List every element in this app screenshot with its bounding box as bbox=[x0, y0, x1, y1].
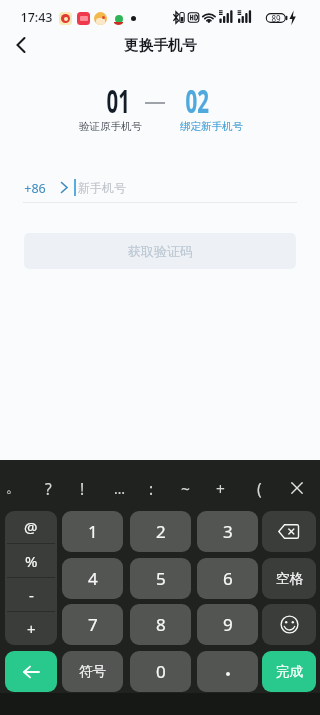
button[interactable] bbox=[18, 175, 72, 200]
staticText: +86 bbox=[24, 180, 46, 197]
button[interactable]: 0 bbox=[130, 651, 191, 692]
button[interactable]: 2 bbox=[130, 511, 191, 552]
button[interactable] bbox=[262, 604, 316, 645]
button[interactable]: : bbox=[134, 471, 168, 505]
staticText: … bbox=[114, 479, 126, 498]
button[interactable]: 获取验证码 bbox=[24, 233, 296, 269]
staticText: ! bbox=[80, 478, 85, 499]
staticText: 完成 bbox=[276, 663, 303, 680]
button[interactable] bbox=[262, 511, 316, 552]
staticText: 02 bbox=[185, 79, 209, 123]
staticText: ~ bbox=[181, 478, 190, 499]
staticText: 5 bbox=[156, 567, 166, 590]
button[interactable]: 6 bbox=[197, 558, 258, 599]
staticText: 7 bbox=[88, 613, 98, 636]
staticText: % bbox=[25, 551, 38, 571]
button[interactable]: … bbox=[103, 471, 137, 505]
button[interactable]: ? bbox=[31, 471, 65, 505]
button[interactable]: ! bbox=[65, 471, 99, 505]
button[interactable]: 符号 bbox=[62, 651, 123, 692]
staticText: + bbox=[27, 619, 36, 639]
staticText: 01 bbox=[106, 79, 130, 123]
staticText: 新手机号 bbox=[78, 180, 126, 195]
staticText: 绑定新手机号 bbox=[180, 120, 243, 133]
staticText: 9 bbox=[223, 613, 233, 636]
button[interactable] bbox=[5, 651, 57, 692]
staticText: 空格 bbox=[276, 570, 303, 587]
button[interactable]: 9 bbox=[197, 604, 258, 645]
button[interactable]: @ bbox=[5, 511, 57, 645]
button[interactable]: + bbox=[203, 471, 237, 505]
button[interactable]: 4 bbox=[62, 558, 123, 599]
staticText: @ bbox=[24, 517, 38, 537]
button[interactable] bbox=[4, 31, 38, 59]
staticText: 2 bbox=[156, 520, 166, 543]
staticText: : bbox=[149, 478, 154, 499]
button[interactable] bbox=[280, 471, 314, 505]
staticText: 验证原手机号 bbox=[79, 120, 142, 133]
button[interactable]: ~ bbox=[168, 471, 202, 505]
staticText: 获取验证码 bbox=[128, 243, 193, 259]
button[interactable]: 5 bbox=[130, 558, 191, 599]
staticText: 更换手机号 bbox=[124, 36, 197, 54]
staticText: 8 bbox=[156, 613, 166, 636]
button[interactable]: 。 bbox=[0, 471, 30, 505]
button[interactable]: ( bbox=[242, 471, 276, 505]
button[interactable]: 3 bbox=[197, 511, 258, 552]
button[interactable]: 空格 bbox=[262, 558, 316, 599]
staticText: + bbox=[216, 478, 225, 499]
staticText: 符号 bbox=[79, 663, 106, 680]
button[interactable]: 8 bbox=[130, 604, 191, 645]
staticText: ? bbox=[45, 478, 52, 499]
button[interactable]: 1 bbox=[62, 511, 123, 552]
button[interactable] bbox=[197, 651, 258, 692]
staticText: 6 bbox=[223, 567, 233, 590]
button[interactable]: 7 bbox=[62, 604, 123, 645]
staticText: ( bbox=[257, 478, 262, 499]
staticText: 1 bbox=[88, 520, 98, 543]
button[interactable]: 完成 bbox=[262, 651, 316, 692]
staticText: 89 bbox=[271, 13, 281, 24]
staticText: 17:43 bbox=[20, 9, 53, 26]
staticText: 3 bbox=[223, 520, 233, 543]
staticText: - bbox=[29, 585, 34, 605]
staticText: 4 bbox=[88, 567, 98, 590]
staticText: 0 bbox=[156, 660, 166, 683]
staticText: 。 bbox=[6, 479, 20, 497]
